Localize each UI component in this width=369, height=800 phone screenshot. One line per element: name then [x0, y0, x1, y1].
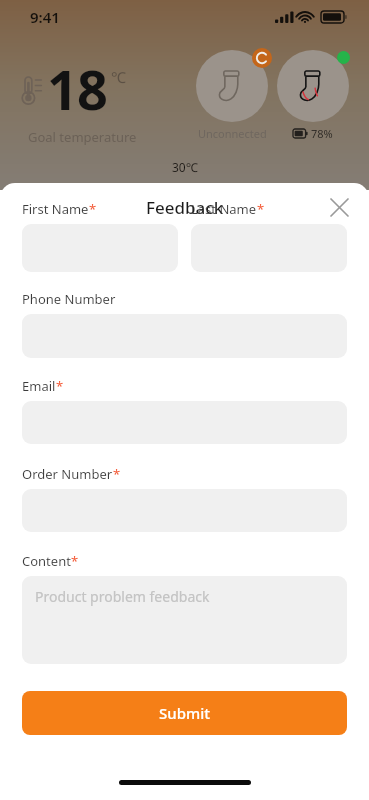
- staticText: *: [113, 465, 121, 483]
- staticText: Content: [22, 552, 71, 570]
- staticText: Phone Number: [22, 290, 116, 308]
- staticText: Feedback: [146, 196, 224, 219]
- button[interactable]: Product problem feedback: [22, 576, 347, 664]
- staticText: Order Number: [22, 465, 113, 483]
- staticText: Last Name: [191, 200, 257, 218]
- staticText: 78%: [311, 126, 333, 141]
- staticText: *: [257, 200, 265, 218]
- staticText: *: [56, 377, 64, 395]
- staticText: 30℃: [172, 159, 198, 175]
- staticText: Unconnected: [198, 126, 267, 141]
- staticText: ℃: [111, 67, 126, 87]
- staticText: 9:41: [30, 7, 60, 27]
- staticText: First Name: [22, 200, 89, 218]
- button[interactable]: Close: [323, 191, 355, 223]
- staticText: Email: [22, 377, 56, 395]
- staticText: Goal temperature: [28, 128, 137, 146]
- staticText: *: [89, 200, 97, 218]
- button[interactable]: Submit: [22, 691, 347, 735]
- staticText: Submit: [159, 703, 210, 723]
- staticText: Product problem feedback: [35, 587, 210, 606]
- staticText: 18: [47, 52, 107, 126]
- staticText: *: [71, 552, 79, 570]
